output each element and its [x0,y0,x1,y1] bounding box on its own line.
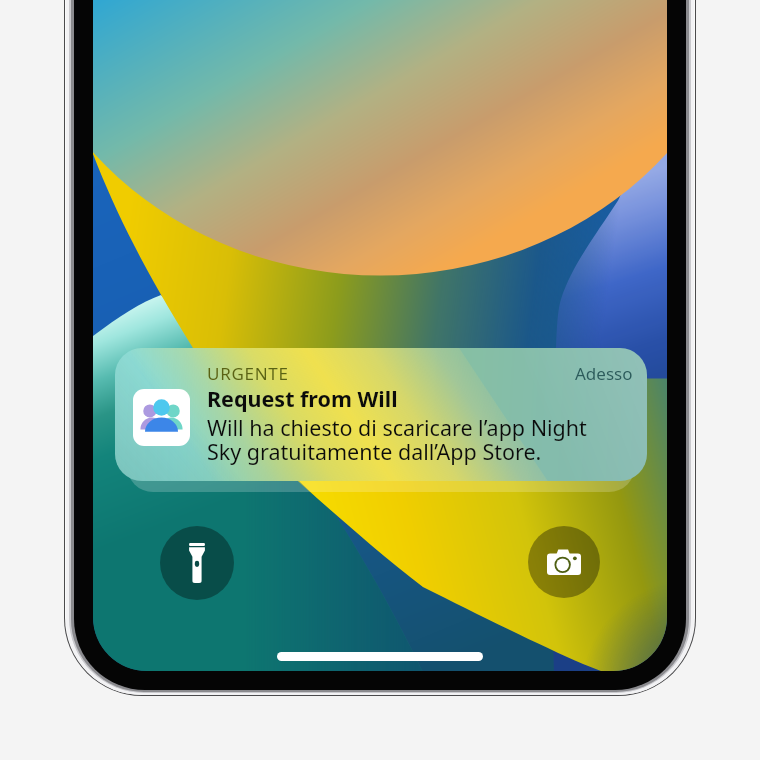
button[interactable]: Flashlight [160,526,234,600]
staticText: URGENTE [207,362,289,385]
staticText: Will ha chiesto di scaricare l’app Night… [207,413,587,466]
button[interactable]: URGENTE [115,348,647,481]
staticText: Request from Will [207,384,398,413]
button[interactable]: Camera [528,526,600,598]
staticText: Adesso [575,362,633,385]
